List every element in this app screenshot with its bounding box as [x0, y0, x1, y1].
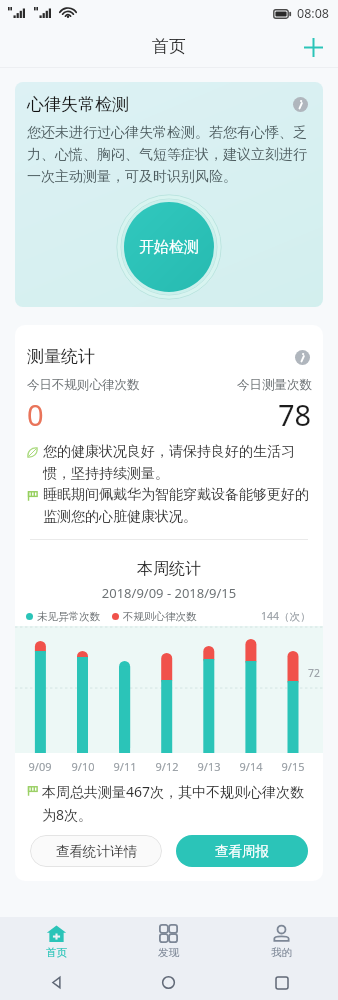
button[interactable]: 查看统计详情	[30, 835, 162, 867]
button[interactable]: 首页	[0, 917, 112, 965]
button[interactable]: 开始检测	[124, 202, 214, 292]
button[interactable]: Info	[290, 94, 310, 114]
staticText: 您的健康状况良好，请保持良好的生活习惯，坚持持续测量。	[43, 443, 311, 483]
button[interactable]: 发现	[112, 917, 225, 965]
button[interactable]: 心律失常检测	[15, 82, 323, 307]
button[interactable]: Info	[292, 347, 312, 367]
staticText: 9/13	[196, 759, 222, 774]
staticText: 08:08	[297, 5, 329, 22]
staticText: 0	[27, 395, 44, 434]
staticText: 查看周报	[215, 843, 269, 860]
staticText: 144（次）	[261, 609, 311, 623]
staticText: 9/10	[70, 759, 96, 774]
button[interactable]: Home	[112, 965, 225, 1000]
button[interactable]: Back	[0, 965, 112, 1000]
staticText: 开始检测	[139, 238, 199, 257]
staticText: 今日不规则心律次数	[27, 377, 140, 393]
staticText: 9/09	[27, 759, 53, 774]
staticText: 发现	[158, 946, 179, 959]
staticText: 首页	[152, 36, 186, 57]
button[interactable]: Recents	[225, 965, 338, 1000]
staticText: 本周总共测量467次，其中不规则心律次数为8次。	[42, 782, 312, 824]
staticText: 本周统计	[15, 559, 323, 579]
staticText: 未见异常次数	[37, 610, 100, 623]
staticText: 9/14	[238, 759, 264, 774]
staticText: 首页	[46, 946, 67, 959]
staticText: 9/11	[112, 759, 138, 774]
staticText: 78	[278, 395, 312, 434]
button[interactable]: Add	[294, 28, 332, 66]
button[interactable]: 我的	[225, 917, 338, 965]
staticText: 72	[308, 666, 321, 680]
staticText: 心律失常检测	[27, 94, 129, 115]
staticText: 您还未进行过心律失常检测。若您有心悸、乏力、心慌、胸闷、气短等症状，建议立刻进行…	[27, 124, 308, 185]
staticText: 查看统计详情	[56, 843, 137, 860]
staticText: 2018/9/09 - 2018/9/15	[15, 584, 323, 602]
staticText: 我的	[271, 946, 292, 959]
staticText: 睡眠期间佩戴华为智能穿戴设备能够更好的监测您的心脏健康状况。	[43, 486, 311, 526]
staticText: 测量统计	[27, 346, 95, 367]
staticText: 9/15	[280, 759, 306, 774]
staticText: 不规则心律次数	[123, 610, 197, 623]
staticText: 9/12	[154, 759, 180, 774]
staticText: 今日测量次数	[237, 377, 312, 393]
button[interactable]: 查看周报	[176, 835, 308, 867]
